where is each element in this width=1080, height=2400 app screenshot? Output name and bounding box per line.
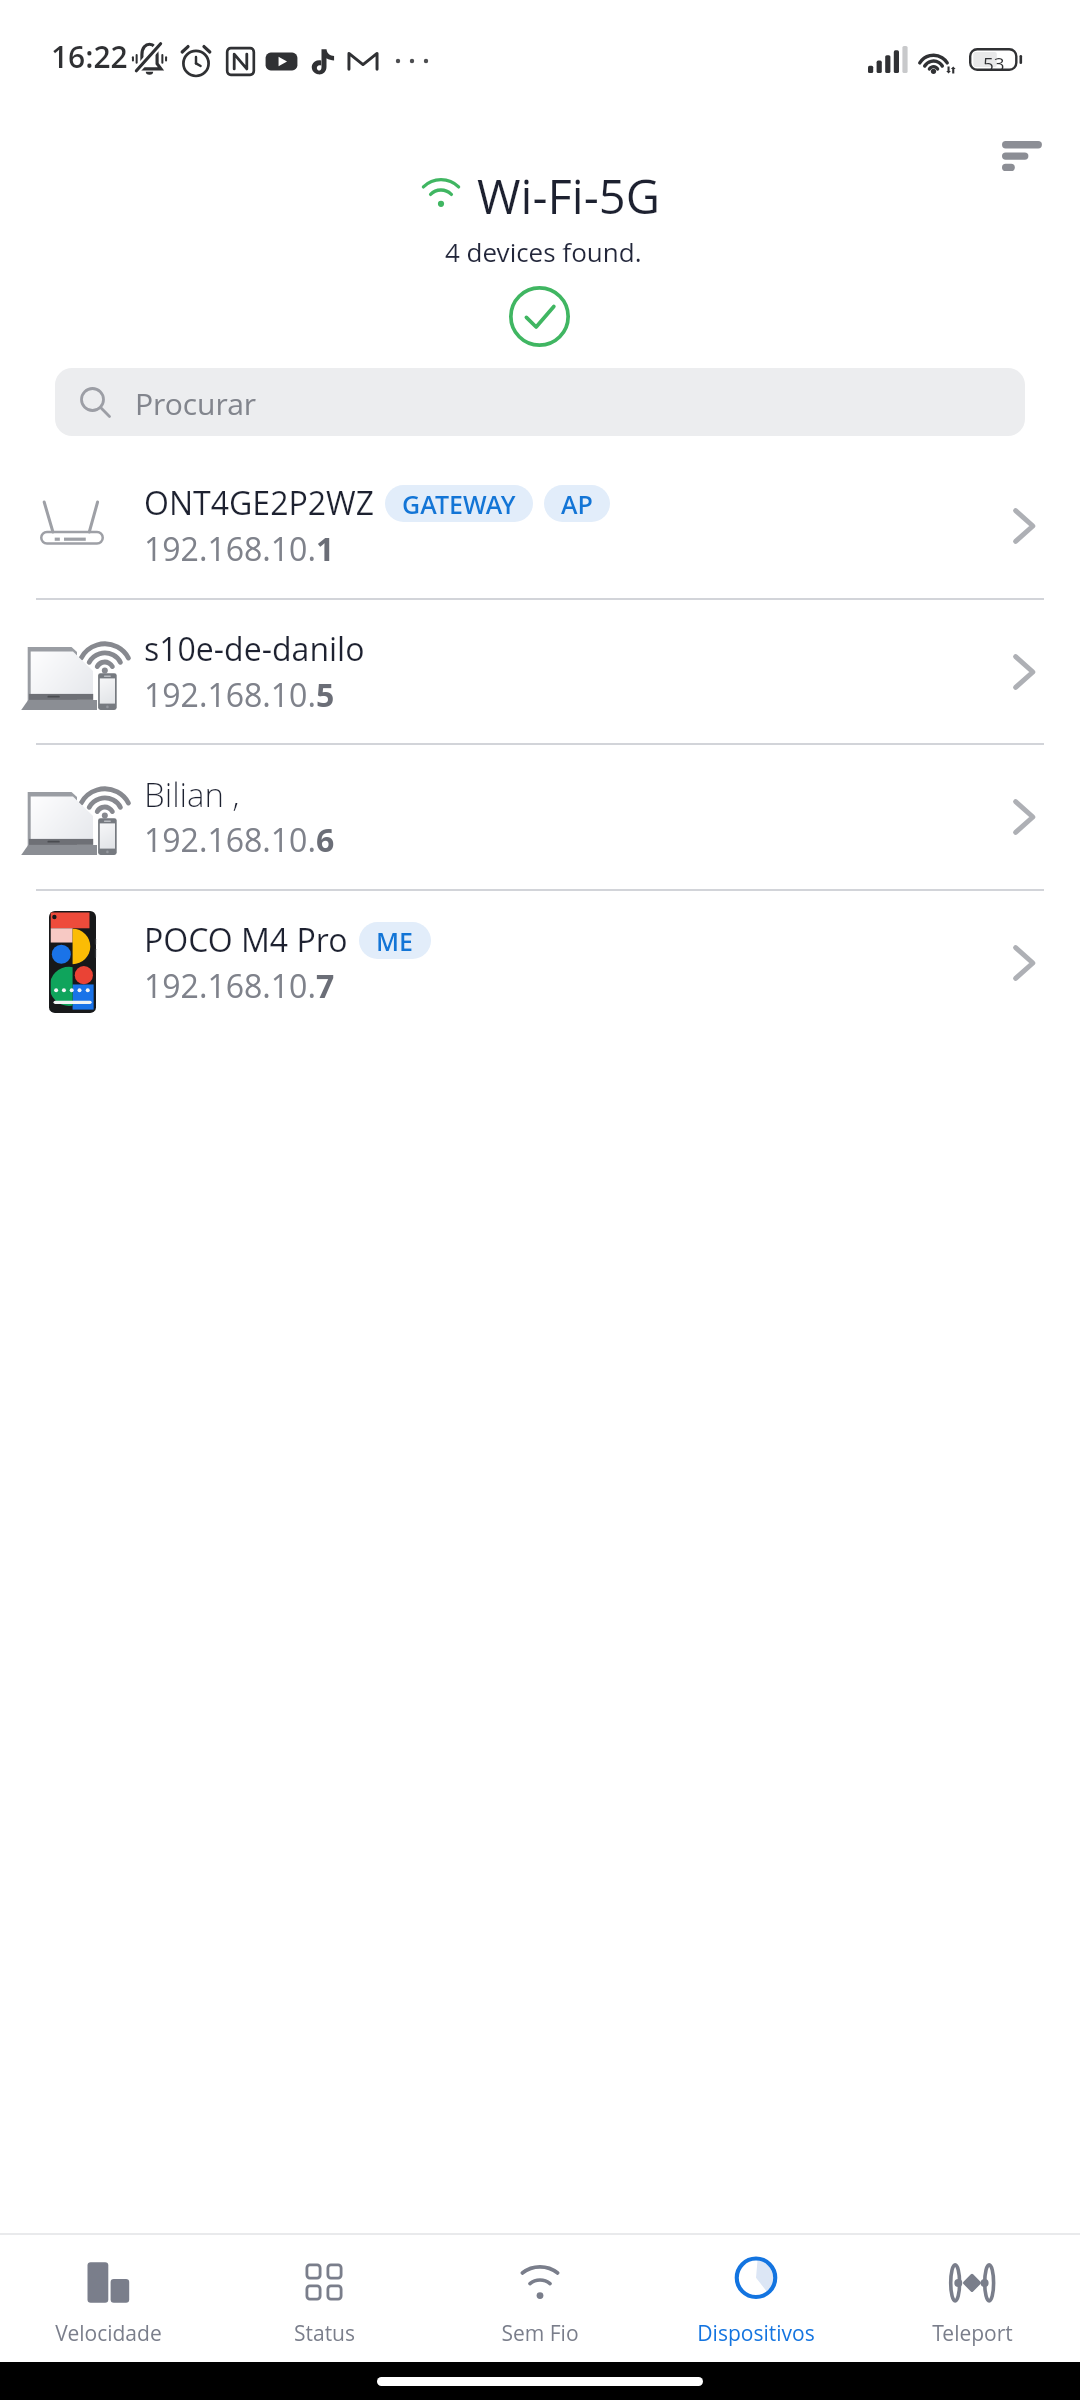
button[interactable]: Procurar	[55, 368, 1025, 436]
staticText: GATEWAY	[402, 487, 516, 521]
staticText: Velocidade	[55, 2319, 162, 2348]
staticText: Procurar	[135, 383, 257, 424]
staticText: 1	[316, 527, 335, 571]
staticText: 4 devices found.	[445, 234, 642, 269]
staticText: 192.168.10.	[144, 673, 316, 717]
staticText: 53	[983, 51, 1005, 74]
button[interactable]: Velocidade	[0, 2234, 216, 2362]
button[interactable]: Status	[216, 2234, 432, 2362]
staticText: Wi-Fi-5G	[477, 164, 660, 228]
staticText: Teleport	[932, 2319, 1013, 2348]
staticText: 192.168.10.	[144, 818, 316, 862]
staticText: 192.168.10.	[144, 527, 316, 571]
staticText: Bilian ,	[144, 772, 240, 817]
button[interactable]: Dispositivos	[648, 2234, 864, 2362]
button[interactable]: Bilian ,	[0, 743, 1080, 889]
staticText: Dispositivos	[697, 2319, 815, 2348]
staticText: ONT4GE2P2WZ	[144, 481, 374, 525]
button[interactable]: Sem Fio	[432, 2234, 648, 2362]
button[interactable]: s10e-de-danilo	[0, 598, 1080, 744]
staticText: AP	[561, 487, 593, 521]
staticText: POCO M4 Pro	[144, 918, 348, 962]
staticText: ME	[376, 924, 414, 958]
staticText: 5	[316, 673, 335, 717]
staticText: s10e-de-danilo	[144, 627, 365, 671]
button[interactable]: POCO M4 Pro	[0, 889, 1080, 1035]
button[interactable]: ONT4GE2P2WZ	[0, 452, 1080, 598]
staticText: 16:22	[51, 36, 128, 77]
button[interactable]: Teleport	[864, 2234, 1080, 2362]
button[interactable]: Sort	[990, 124, 1062, 188]
staticText: 7	[316, 964, 335, 1008]
staticText: Sem Fio	[501, 2319, 579, 2348]
staticText: 192.168.10.	[144, 964, 316, 1008]
staticText: Status	[294, 2319, 355, 2348]
staticText: 6	[316, 818, 335, 862]
